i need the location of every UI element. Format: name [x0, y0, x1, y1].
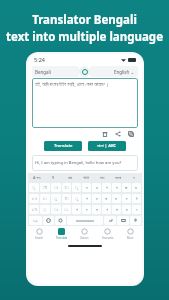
button[interactable]: ষ	[92, 205, 101, 214]
button[interactable]: ঢ	[82, 205, 91, 214]
staticText: ৃ	[32, 186, 36, 190]
button[interactable]: সাত	[94, 173, 110, 182]
staticText: ি	[65, 197, 69, 201]
staticText: ব	[86, 186, 88, 190]
staticText: া	[54, 186, 58, 190]
staticText: ষ	[96, 208, 98, 212]
button[interactable]: বাংলা | ABC	[88, 141, 126, 151]
staticText: ে	[43, 197, 48, 201]
staticText: দ	[116, 186, 118, 190]
button[interactable]: Enter	[104, 216, 116, 225]
staticText: বাংলা | ABC	[97, 143, 117, 149]
staticText: ট	[136, 197, 138, 201]
staticText: র	[96, 197, 98, 201]
button[interactable]: প	[82, 194, 91, 203]
button[interactable]: Hi, I am typing in Bengali, hello how ar…	[32, 155, 138, 171]
button[interactable]: English ⌄	[90, 66, 138, 77]
button[interactable]: Backspace	[117, 216, 129, 225]
staticText: ্	[43, 208, 47, 212]
button[interactable]: থ	[72, 205, 81, 214]
button[interactable]: য়	[122, 205, 131, 214]
staticText: ক	[105, 197, 108, 201]
staticText: পাঁচটা	[83, 176, 90, 180]
button[interactable]: Space	[67, 216, 103, 225]
staticText: থ	[76, 208, 78, 212]
button[interactable]: Search	[28, 226, 50, 242]
button[interactable]: জ	[122, 183, 131, 192]
button[interactable]: Translate	[44, 141, 82, 151]
button[interactable]: ে	[40, 194, 50, 203]
button[interactable]: ৌ	[29, 205, 39, 214]
staticText: Games	[80, 236, 89, 240]
staticText: শ	[106, 208, 108, 212]
staticText: Search	[35, 236, 44, 240]
button[interactable]: ্র	[51, 194, 61, 203]
button[interactable]: হ	[92, 183, 101, 192]
staticText: Translator Bengali	[32, 12, 137, 28]
button[interactable]: কার	[62, 173, 78, 182]
button[interactable]: শ	[102, 205, 111, 214]
staticText: text into multiple language	[6, 29, 163, 45]
staticText: 5:24	[34, 56, 45, 63]
staticText: ৌ	[32, 208, 37, 212]
button[interactable]: স	[112, 205, 121, 214]
staticText: প	[86, 197, 88, 201]
staticText: সাত	[100, 176, 105, 180]
button[interactable]: Bengali	[32, 66, 79, 77]
button[interactable]: ঃ	[62, 205, 71, 214]
button[interactable]: Favourite	[96, 226, 119, 242]
staticText: Translate	[54, 143, 73, 149]
button[interactable]: More	[119, 226, 142, 242]
button[interactable]: ং	[51, 205, 61, 214]
button[interactable]: ী	[40, 183, 50, 192]
button[interactable]: ট	[132, 194, 141, 203]
button[interactable]: Swap languages	[79, 66, 90, 77]
button[interactable]: ো	[29, 194, 39, 203]
button[interactable]: ন	[126, 173, 142, 182]
button[interactable]: ৎ	[132, 205, 141, 214]
button[interactable]: হাই, আমি বাংলায় টাইপ করছি, হ্যালো কেমন …	[32, 78, 138, 128]
button[interactable]: ্	[40, 205, 50, 214]
button[interactable]: র	[92, 194, 101, 203]
button[interactable]: ১২৩	[29, 216, 42, 225]
button[interactable]: A→অ	[28, 173, 45, 182]
button[interactable]: Mic	[130, 216, 141, 225]
staticText: More	[127, 236, 134, 240]
button[interactable]: Emoji	[43, 216, 54, 225]
staticText: Bengali	[35, 69, 51, 75]
button[interactable]: ব	[82, 183, 91, 192]
button[interactable]: গ	[102, 183, 111, 192]
button[interactable]: Translate	[50, 226, 73, 242]
button[interactable]: দ	[112, 183, 121, 192]
button[interactable]: ক	[102, 194, 111, 203]
staticText: হাই, আমি বাংলায় টাইপ করছি, হ্যালো কেমন …	[35, 81, 109, 87]
staticText: জ	[125, 186, 128, 190]
button[interactable]: পাঁচটা	[78, 173, 94, 182]
button[interactable]: Copy	[127, 130, 135, 138]
button[interactable]: Games	[73, 226, 96, 242]
staticText: ৈ	[65, 186, 69, 190]
button[interactable]: ৈ	[62, 183, 71, 192]
button[interactable]: কমলা	[110, 173, 126, 182]
button[interactable]: ি	[62, 194, 71, 203]
button[interactable]: Delete	[101, 130, 109, 138]
staticText: হ	[96, 186, 98, 190]
button[interactable]: ু	[72, 194, 81, 203]
staticText: ্র	[54, 197, 58, 201]
staticText: ঃ	[64, 208, 69, 212]
staticText: কার	[68, 176, 73, 180]
button[interactable]: ূ	[72, 183, 81, 192]
staticText: ১২৩	[33, 219, 38, 222]
button[interactable]: া	[51, 183, 61, 192]
staticText: ত	[115, 197, 118, 201]
button[interactable]: ৃ	[29, 183, 39, 192]
button[interactable]: বী	[45, 173, 62, 182]
staticText: ো	[32, 197, 37, 201]
button[interactable]: ড	[132, 183, 141, 192]
button[interactable]: চ	[122, 194, 131, 203]
button[interactable]: Share	[114, 130, 122, 138]
staticText: Translate	[56, 236, 68, 240]
button[interactable]: ত	[112, 194, 121, 203]
button[interactable]: Settings	[55, 216, 66, 225]
staticText: চ	[126, 197, 128, 201]
